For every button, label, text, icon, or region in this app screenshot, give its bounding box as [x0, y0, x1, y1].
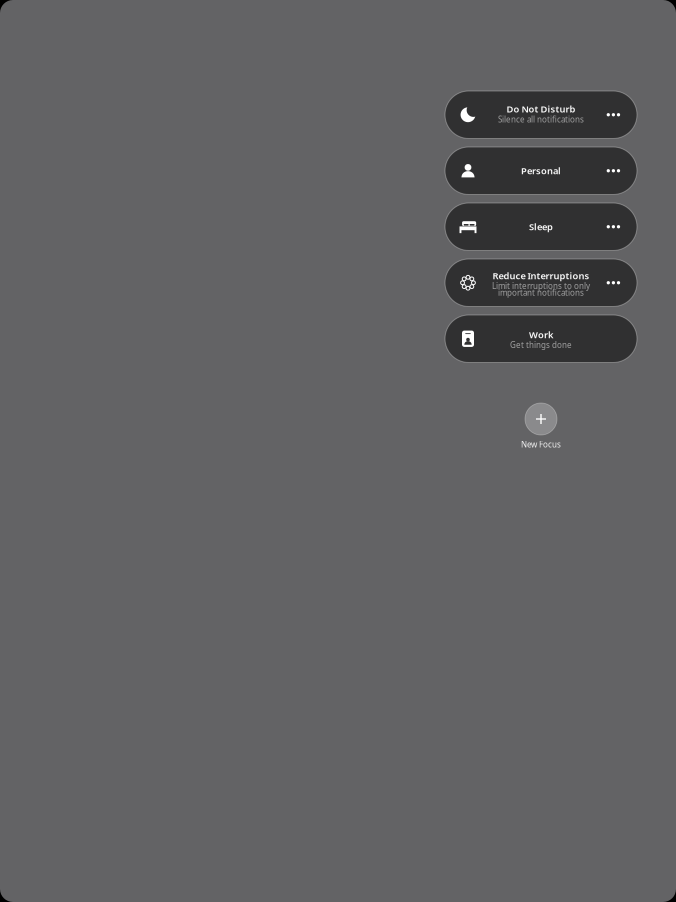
- button[interactable]: Sleep: [445, 203, 637, 250]
- button[interactable]: Work: [445, 315, 637, 362]
- staticText: Work: [529, 329, 553, 341]
- button[interactable]: Reduce Interruptions: [445, 259, 637, 306]
- button[interactable]: Personal: [445, 147, 637, 194]
- staticText: Silence all notifications: [498, 114, 584, 125]
- staticText: Get things done: [510, 340, 572, 350]
- staticText: Limit interruptions to only: [492, 281, 590, 291]
- staticText: Personal: [521, 165, 561, 177]
- staticText: important notifications: [498, 287, 584, 298]
- staticText: Reduce Interruptions: [492, 269, 589, 282]
- staticText: New Focus: [521, 439, 561, 450]
- button[interactable]: Do Not Disturb: [445, 91, 637, 138]
- button[interactable]: New Focus: [445, 403, 637, 450]
- staticText: Do Not Disturb: [506, 103, 575, 115]
- staticText: Sleep: [529, 221, 553, 233]
